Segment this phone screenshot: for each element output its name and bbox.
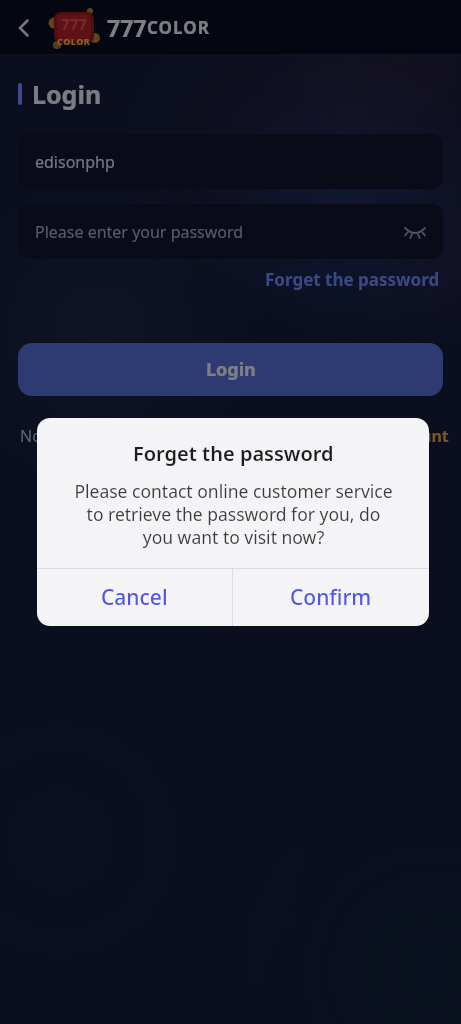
button[interactable]: Register an account [290,425,449,447]
staticText: Cancel [101,583,168,612]
staticText: 777 [61,14,88,34]
staticText: Please enter your password [35,221,244,243]
staticText: Forget the password [265,268,440,291]
button[interactable]: Cancel [37,569,232,626]
button[interactable]: Please enter your password [18,204,443,259]
button[interactable]: Login [18,343,443,396]
button[interactable]: Forget the password [265,268,440,291]
staticText: Confirm [290,583,372,612]
button[interactable]: Confirm [233,569,429,626]
button[interactable]: edisonphp [18,134,443,189]
staticText: 777 [107,12,147,43]
staticText: No account? [20,425,113,447]
button[interactable] [8,11,42,45]
staticText: edisonphp [35,151,115,173]
staticText: Login [206,357,256,382]
staticText: Login [32,77,102,111]
staticText: Forget the password [133,440,334,467]
staticText: Please contact online customer service t… [74,479,393,550]
staticText: COLOR [57,35,91,47]
staticText: Register an account [290,425,449,447]
staticText: COLOR [147,16,210,39]
